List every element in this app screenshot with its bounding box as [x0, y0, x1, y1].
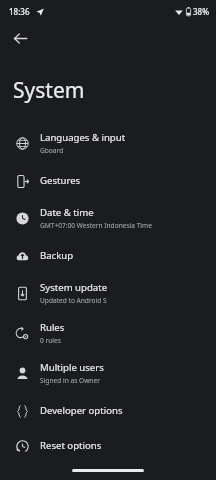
staticText: Gestures [40, 174, 81, 187]
button[interactable]: Date & time [0, 198, 216, 238]
staticText: Reset options [40, 439, 102, 452]
staticText: System [13, 76, 85, 105]
staticText: Rules [40, 321, 65, 334]
button[interactable]: Multiple users [0, 353, 216, 393]
staticText: Updated to Android S [40, 296, 107, 305]
staticText: GMT+07:00 Western Indonesia Time [40, 221, 152, 230]
staticText: Multiple users [40, 361, 104, 374]
staticText: 0 rules [40, 336, 61, 345]
button[interactable]: Reset options [0, 428, 216, 463]
button[interactable]: System update [0, 273, 216, 313]
button[interactable]: Gestures [0, 163, 216, 198]
staticText: 18:36 [9, 6, 30, 17]
button[interactable]: Rules [0, 313, 216, 353]
button[interactable]: Back [4, 22, 36, 54]
staticText: System update [40, 281, 108, 294]
button[interactable]: Languages & input [0, 123, 216, 163]
staticText: Developer options [40, 404, 123, 417]
staticText: Date & time [40, 206, 94, 219]
staticText: Gboard [40, 146, 64, 155]
button[interactable]: Developer options [0, 393, 216, 428]
staticText: Backup [40, 249, 74, 262]
staticText: 38% [193, 6, 209, 17]
staticText: Signed in as Owner [40, 376, 100, 385]
button[interactable]: Backup [0, 238, 216, 273]
staticText: Languages & input [40, 131, 126, 144]
